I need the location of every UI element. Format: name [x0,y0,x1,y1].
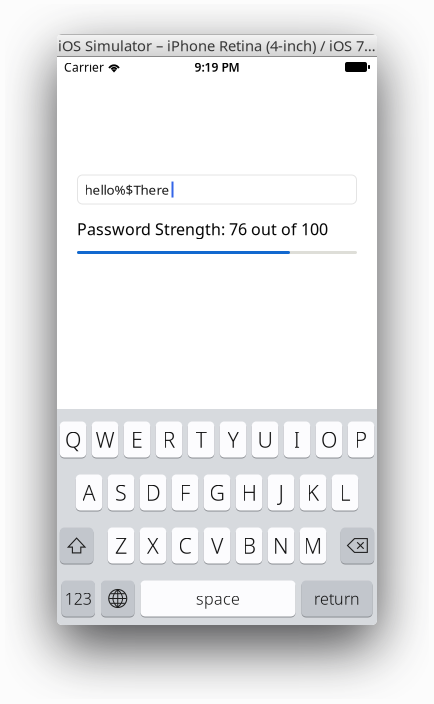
button[interactable]: V [204,527,230,564]
staticText: Carrier [64,59,104,75]
button[interactable]: 123 [61,580,95,617]
button[interactable]: H [236,474,262,511]
staticText: Password Strength: 76 out of 100 [77,218,328,240]
staticText: F [179,478,190,507]
button[interactable]: N [268,527,294,564]
staticText: U [257,425,272,454]
button[interactable]: C [172,527,198,564]
button[interactable]: O [316,421,342,458]
staticText: A [82,478,95,507]
staticText: K [306,478,319,507]
staticText: space [196,588,240,609]
button[interactable]: X [140,527,166,564]
staticText: O [321,425,337,454]
staticText: D [145,478,160,507]
staticText: J [278,478,283,507]
staticText: V [211,531,223,560]
staticText: Y [227,425,238,454]
staticText: R [162,425,175,454]
button[interactable]: Next keyboard [101,580,134,617]
button[interactable]: J [268,474,294,511]
staticText: I [293,425,300,454]
staticText: S [115,478,127,507]
staticText: G [209,478,224,507]
staticText: 123 [65,588,92,609]
staticText: return [314,588,360,609]
button[interactable]: G [204,474,230,511]
staticText: iOS Simulator – iPhone Retina (4-inch) /… [58,36,376,55]
button[interactable]: L [332,474,358,511]
button[interactable]: W [92,421,118,458]
button[interactable]: return [301,580,372,617]
button[interactable]: F [172,474,198,511]
staticText: 9:19 PM [194,59,239,75]
button[interactable]: hello%$There [77,175,356,204]
button[interactable]: Y [220,421,246,458]
staticText: L [339,478,350,507]
button[interactable]: T [188,421,214,458]
button[interactable]: Delete [341,527,374,564]
button[interactable]: K [300,474,326,511]
staticText: H [241,478,256,507]
button[interactable]: Shift [60,527,93,564]
button[interactable]: M [300,527,326,564]
staticText: T [195,425,206,454]
staticText: M [303,531,322,560]
button[interactable]: B [236,527,262,564]
button[interactable]: Q [60,421,86,458]
button[interactable]: R [156,421,182,458]
staticText: B [242,531,255,560]
button[interactable]: U [252,421,278,458]
button[interactable]: space [140,580,295,617]
button[interactable]: Z [108,527,134,564]
button[interactable]: S [108,474,134,511]
button[interactable]: D [140,474,166,511]
button[interactable]: E [124,421,150,458]
staticText: W [95,425,114,454]
staticText: N [273,531,289,560]
staticText: E [131,425,143,454]
staticText: C [178,531,191,560]
button[interactable]: A [76,474,102,511]
staticText: P [354,425,367,454]
staticText: Z [115,531,127,560]
staticText: Q [65,425,81,454]
staticText: X [147,531,159,560]
button[interactable]: P [348,421,374,458]
button[interactable]: I [284,421,310,458]
staticText: hello%$There [84,181,169,198]
